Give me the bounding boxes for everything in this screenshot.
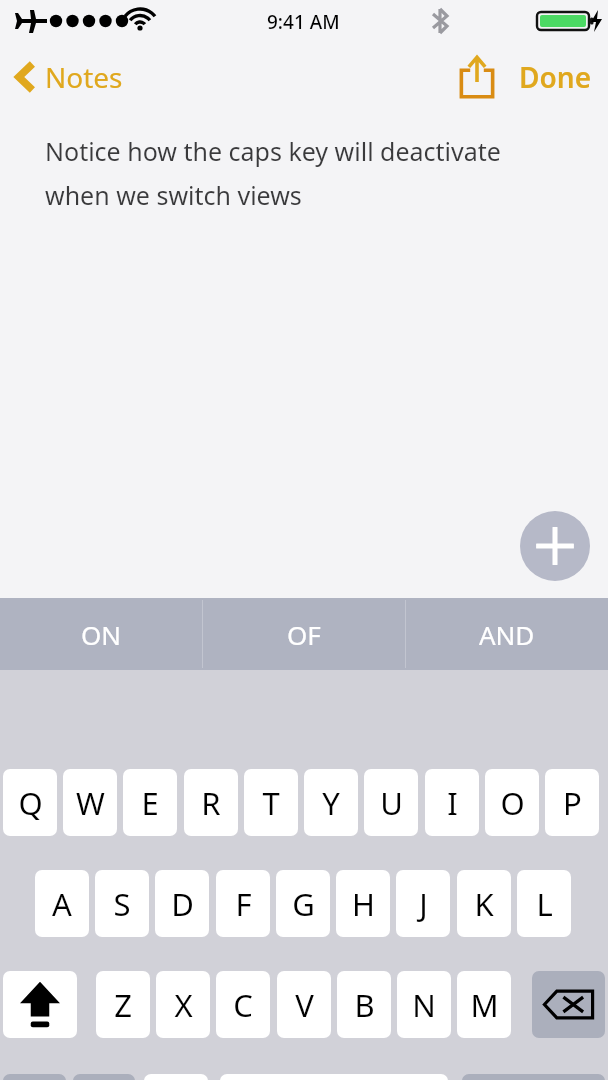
button[interactable]: Notes xyxy=(0,52,135,102)
staticText: ON xyxy=(81,617,122,652)
button[interactable]: I xyxy=(425,769,479,836)
button[interactable]: X xyxy=(156,971,210,1038)
staticText: E xyxy=(141,782,159,824)
button[interactable]: Backspace xyxy=(532,971,605,1038)
staticText: Z xyxy=(114,984,132,1026)
button[interactable]: space xyxy=(220,1074,448,1080)
staticText: W xyxy=(76,782,105,824)
button[interactable]: Z xyxy=(96,971,150,1038)
button[interactable]: C xyxy=(216,971,270,1038)
staticText: B xyxy=(354,984,375,1026)
staticText: Notice how the caps key will deactivate … xyxy=(45,134,563,213)
staticText: Notes xyxy=(45,58,123,96)
button[interactable]: T xyxy=(244,769,298,836)
button[interactable]: S xyxy=(95,870,149,937)
staticText: N xyxy=(412,984,436,1026)
button[interactable]: Share xyxy=(450,46,504,108)
staticText: U xyxy=(380,782,403,824)
staticText: OF xyxy=(287,617,321,652)
button[interactable]: AND xyxy=(406,598,608,670)
staticText: A xyxy=(52,883,72,925)
staticText: K xyxy=(474,883,494,925)
staticText: Done xyxy=(519,58,592,96)
button[interactable]: R xyxy=(184,769,238,836)
button[interactable]: B xyxy=(337,971,391,1038)
staticText: T xyxy=(262,782,280,824)
button[interactable]: D xyxy=(155,870,209,937)
button[interactable]: Done xyxy=(503,50,608,104)
button[interactable]: O xyxy=(485,769,539,836)
staticText: C xyxy=(233,984,253,1026)
button[interactable]: P xyxy=(545,769,599,836)
staticText: AND xyxy=(479,617,535,652)
staticText: I xyxy=(447,782,458,824)
staticText: L xyxy=(536,883,553,925)
button[interactable]: Emoji xyxy=(73,1074,135,1080)
button[interactable]: Add xyxy=(520,511,590,581)
staticText: V xyxy=(295,984,314,1026)
button[interactable]: H xyxy=(336,870,390,937)
staticText: P xyxy=(563,782,582,824)
button[interactable]: 123 xyxy=(3,1074,66,1080)
button[interactable]: Shift xyxy=(3,971,77,1038)
button[interactable]: L xyxy=(517,870,571,937)
button[interactable]: K xyxy=(457,870,511,937)
button[interactable]: M xyxy=(457,971,511,1038)
button[interactable]: G xyxy=(276,870,330,937)
staticText: D xyxy=(171,883,194,925)
button[interactable]: ON xyxy=(0,598,202,670)
staticText: R xyxy=(201,782,221,824)
button[interactable]: N xyxy=(397,971,451,1038)
button[interactable]: return xyxy=(462,1074,605,1080)
staticText: Y xyxy=(322,782,340,824)
staticText: 9:41 AM xyxy=(267,9,340,35)
staticText: F xyxy=(235,883,252,925)
button[interactable]: OF xyxy=(203,598,405,670)
button[interactable]: Q xyxy=(3,769,57,836)
button[interactable]: F xyxy=(216,870,270,937)
button[interactable]: W xyxy=(63,769,117,836)
staticText: X xyxy=(174,984,193,1026)
button[interactable]: Y xyxy=(304,769,358,836)
button[interactable]: V xyxy=(277,971,331,1038)
staticText: G xyxy=(292,883,315,925)
button[interactable]: J xyxy=(396,870,450,937)
button[interactable]: U xyxy=(364,769,418,836)
staticText: O xyxy=(500,782,525,824)
staticText: J xyxy=(419,883,428,925)
button[interactable]: Dictate xyxy=(144,1074,208,1080)
staticText: S xyxy=(113,883,131,925)
button[interactable]: A xyxy=(35,870,89,937)
staticText: M xyxy=(470,984,499,1026)
button[interactable]: E xyxy=(123,769,177,836)
staticText: H xyxy=(352,883,375,925)
staticText: Q xyxy=(18,782,43,824)
